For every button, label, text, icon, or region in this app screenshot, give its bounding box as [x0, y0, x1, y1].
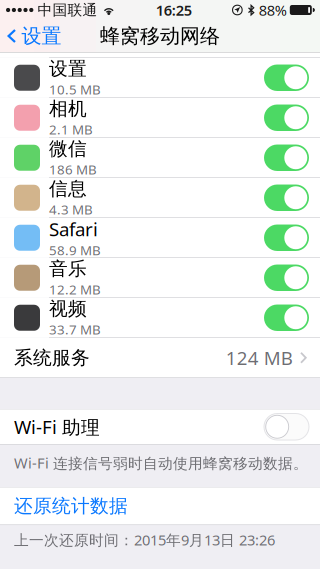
- button[interactable]: 系统服务: [0, 338, 320, 377]
- staticText: 186 MB: [49, 160, 97, 178]
- staticText: 相机: [49, 97, 87, 120]
- button[interactable]: Wi-Fi 助理: [0, 409, 320, 444]
- button[interactable]: iTunes Store: [0, 18, 320, 57]
- staticText: 124 MB: [226, 345, 293, 370]
- staticText: 88%: [259, 0, 287, 20]
- staticText: 信息: [49, 177, 87, 200]
- staticText: iTunes Store: [49, 25, 158, 50]
- staticText: 微信: [49, 137, 87, 160]
- staticText: 视频: [49, 297, 87, 320]
- button[interactable]: 设置: [0, 20, 72, 52]
- staticText: 10.5 MB: [49, 80, 101, 98]
- button[interactable]: 相机: [0, 98, 320, 137]
- staticText: 2.1 MB: [49, 120, 93, 138]
- button[interactable]: 设置: [0, 58, 320, 97]
- staticText: 设置: [49, 57, 87, 80]
- button[interactable]: 音乐: [0, 258, 320, 297]
- staticText: Wi-Fi 助理: [14, 414, 100, 439]
- button[interactable]: 视频: [0, 298, 320, 337]
- staticText: 中国联通: [37, 1, 97, 19]
- staticText: Safari: [49, 216, 98, 241]
- staticText: 还原统计数据: [14, 495, 128, 517]
- staticText: 系统服务: [14, 346, 90, 369]
- staticText: 设置: [22, 24, 62, 48]
- button[interactable]: Safari: [0, 218, 320, 257]
- staticText: 12.2 MB: [49, 280, 101, 298]
- staticText: 16:25: [156, 0, 192, 20]
- staticText: 音乐: [49, 257, 87, 280]
- button[interactable]: 微信: [0, 138, 320, 177]
- staticText: 蜂窝移动网络: [100, 24, 220, 48]
- staticText: 33.7 MB: [49, 320, 101, 338]
- staticText: Wi-Fi 连接信号弱时自动使用蜂窝移动数据。: [14, 453, 308, 473]
- staticText: 上一次还原时间：2015年9月13日 23:26: [14, 530, 275, 550]
- staticText: 58.9 MB: [49, 241, 101, 259]
- button[interactable]: 信息: [0, 178, 320, 217]
- button[interactable]: 还原统计数据: [0, 488, 320, 525]
- staticText: 4.3 MB: [49, 200, 93, 218]
